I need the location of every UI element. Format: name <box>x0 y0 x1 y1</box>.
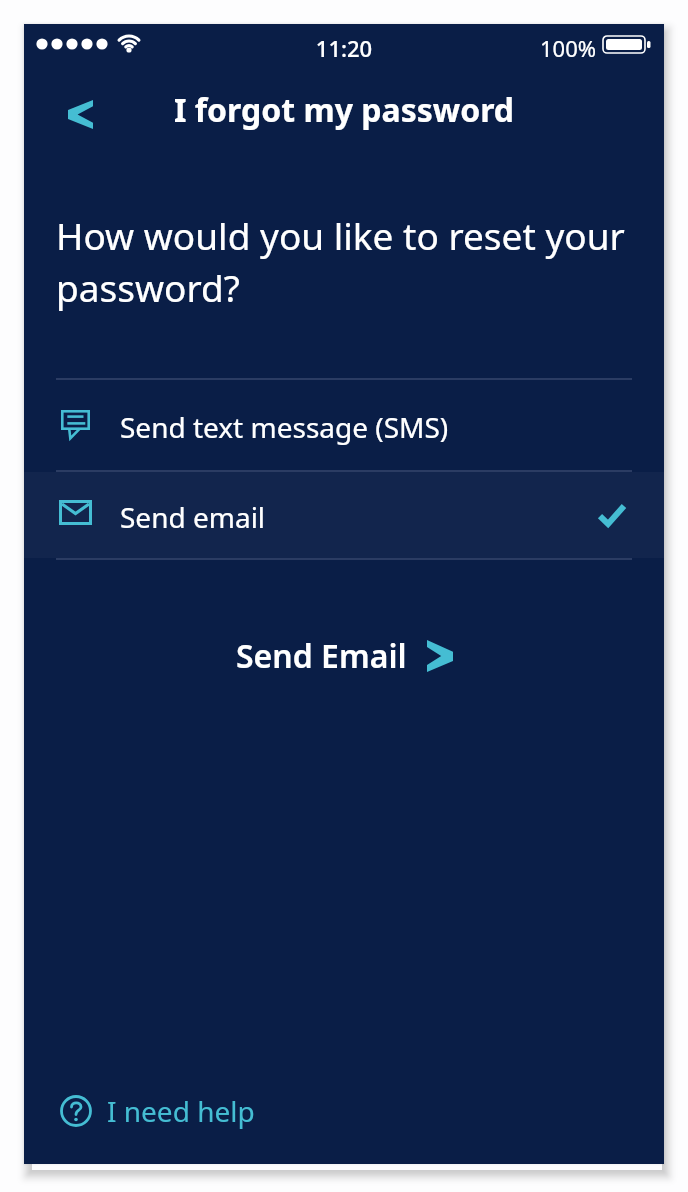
button[interactable]: I need help <box>60 1092 255 1130</box>
staticText: I need help <box>107 1092 255 1130</box>
button[interactable]: Send text message (SMS) <box>24 380 664 470</box>
staticText: How would you like to reset your passwor… <box>56 210 641 313</box>
staticText: 11:20 <box>24 33 664 63</box>
staticText: Send email <box>120 498 266 536</box>
button[interactable]: Send Email <box>236 634 453 678</box>
staticText: Send Email <box>236 634 407 678</box>
button[interactable] <box>50 82 110 146</box>
button[interactable]: Send email <box>24 472 664 558</box>
staticText: I forgot my password <box>24 88 664 132</box>
staticText: Send text message (SMS) <box>120 408 449 446</box>
staticText: 100% <box>476 33 596 63</box>
